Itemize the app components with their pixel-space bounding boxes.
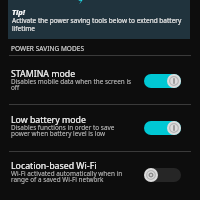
staticText: Wi-Fi activated automatically when in ra…	[11, 169, 134, 184]
staticText: Disables mobile data when the screen is …	[11, 77, 134, 92]
button[interactable]: Toggle off	[144, 168, 181, 182]
staticText: POWER SAVING MODES	[11, 44, 85, 53]
button[interactable]: STAMINA mode	[0, 56, 200, 104]
button[interactable]: Toggle on	[144, 74, 181, 88]
staticText: Activate the power saving tools below to…	[12, 16, 188, 33]
button[interactable]: Low battery mode	[0, 105, 200, 151]
staticText: Location-based Wi-Fi	[11, 160, 97, 172]
staticText: Disables functions in order to save powe…	[11, 123, 134, 138]
staticText: Tip!	[12, 7, 26, 17]
staticText: Low battery mode	[11, 114, 86, 126]
button[interactable]: Toggle on	[144, 121, 181, 135]
staticText: STAMINA mode	[11, 68, 76, 80]
button[interactable]: Location-based Wi-Fi	[0, 152, 200, 200]
